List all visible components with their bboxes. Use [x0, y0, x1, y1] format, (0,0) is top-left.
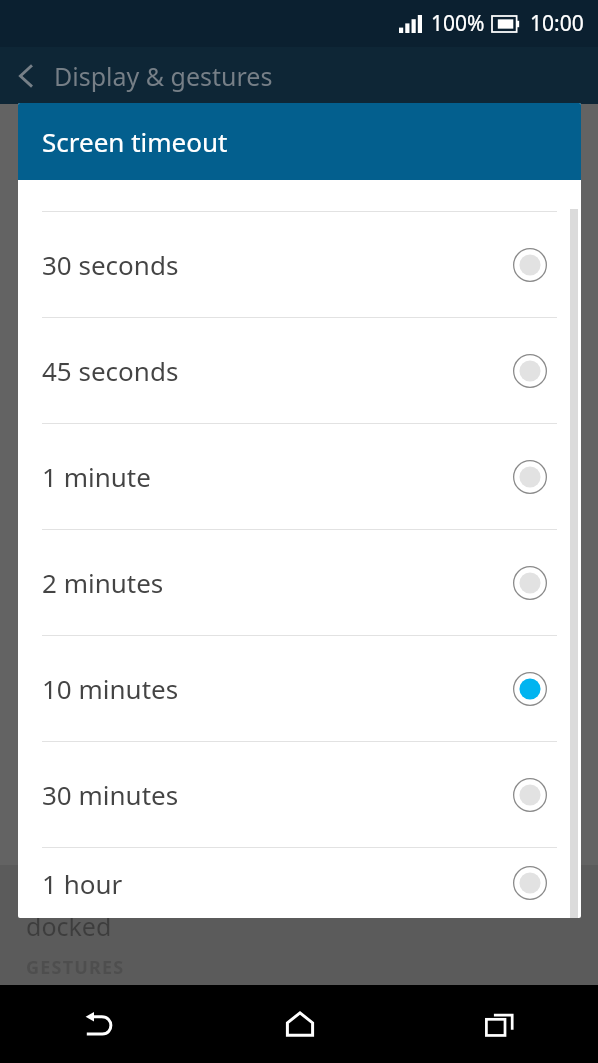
staticText: 10:00 [530, 9, 584, 38]
button[interactable]: 2 minutes [18, 530, 581, 635]
button[interactable]: Back [0, 49, 54, 103]
button[interactable]: Home [200, 985, 399, 1063]
button[interactable]: Back [0, 985, 200, 1063]
button[interactable]: 30 minutes [18, 742, 581, 847]
button[interactable]: 30 seconds [18, 212, 581, 317]
staticText: Screen timeout [42, 124, 228, 159]
button[interactable]: 1 minute [18, 424, 581, 529]
staticText: 30 minutes [42, 777, 513, 812]
staticText: docked [26, 909, 112, 943]
button[interactable]: 45 seconds [18, 318, 581, 423]
button[interactable]: Recent apps [399, 985, 598, 1063]
staticText: 100% [431, 9, 485, 38]
staticText: 1 hour [42, 866, 513, 901]
staticText: 1 minute [42, 459, 513, 494]
button[interactable]: 10 minutes [18, 636, 581, 741]
staticText: GESTURES [26, 955, 125, 980]
staticText: 30 seconds [42, 247, 513, 282]
staticText: Display & gestures [54, 59, 273, 93]
button[interactable]: 1 hour [18, 848, 581, 918]
staticText: 2 minutes [42, 565, 513, 600]
staticText: 10 minutes [42, 671, 513, 706]
staticText: 45 seconds [42, 353, 513, 388]
